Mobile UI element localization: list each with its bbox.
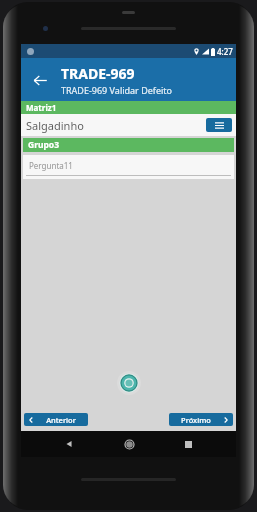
staticText: Grupo3 [28,139,60,151]
button[interactable]: Próximo [169,413,233,426]
button[interactable]: Grupo3 [23,138,234,152]
staticText: Pergunta11 [29,160,73,171]
staticText: TRADE-969 [61,64,135,83]
staticText: 4:27 [217,46,233,57]
button[interactable]: Back [58,433,80,455]
button[interactable]: Pergunta11 [23,155,234,179]
staticText: TRADE-969 Validar Defeito [61,84,172,96]
staticText: Salgadinho [26,118,206,133]
button[interactable]: Anterior [24,413,88,426]
button[interactable]: Open list [206,118,232,132]
staticText: Matriz1 [26,102,57,113]
button[interactable]: Back [25,65,55,95]
button[interactable]: Matriz1 [21,101,236,114]
staticText: Próximo [181,415,211,425]
button[interactable]: Home [118,433,140,455]
button[interactable]: Recent apps [177,433,199,455]
staticText: Anterior [46,415,76,425]
